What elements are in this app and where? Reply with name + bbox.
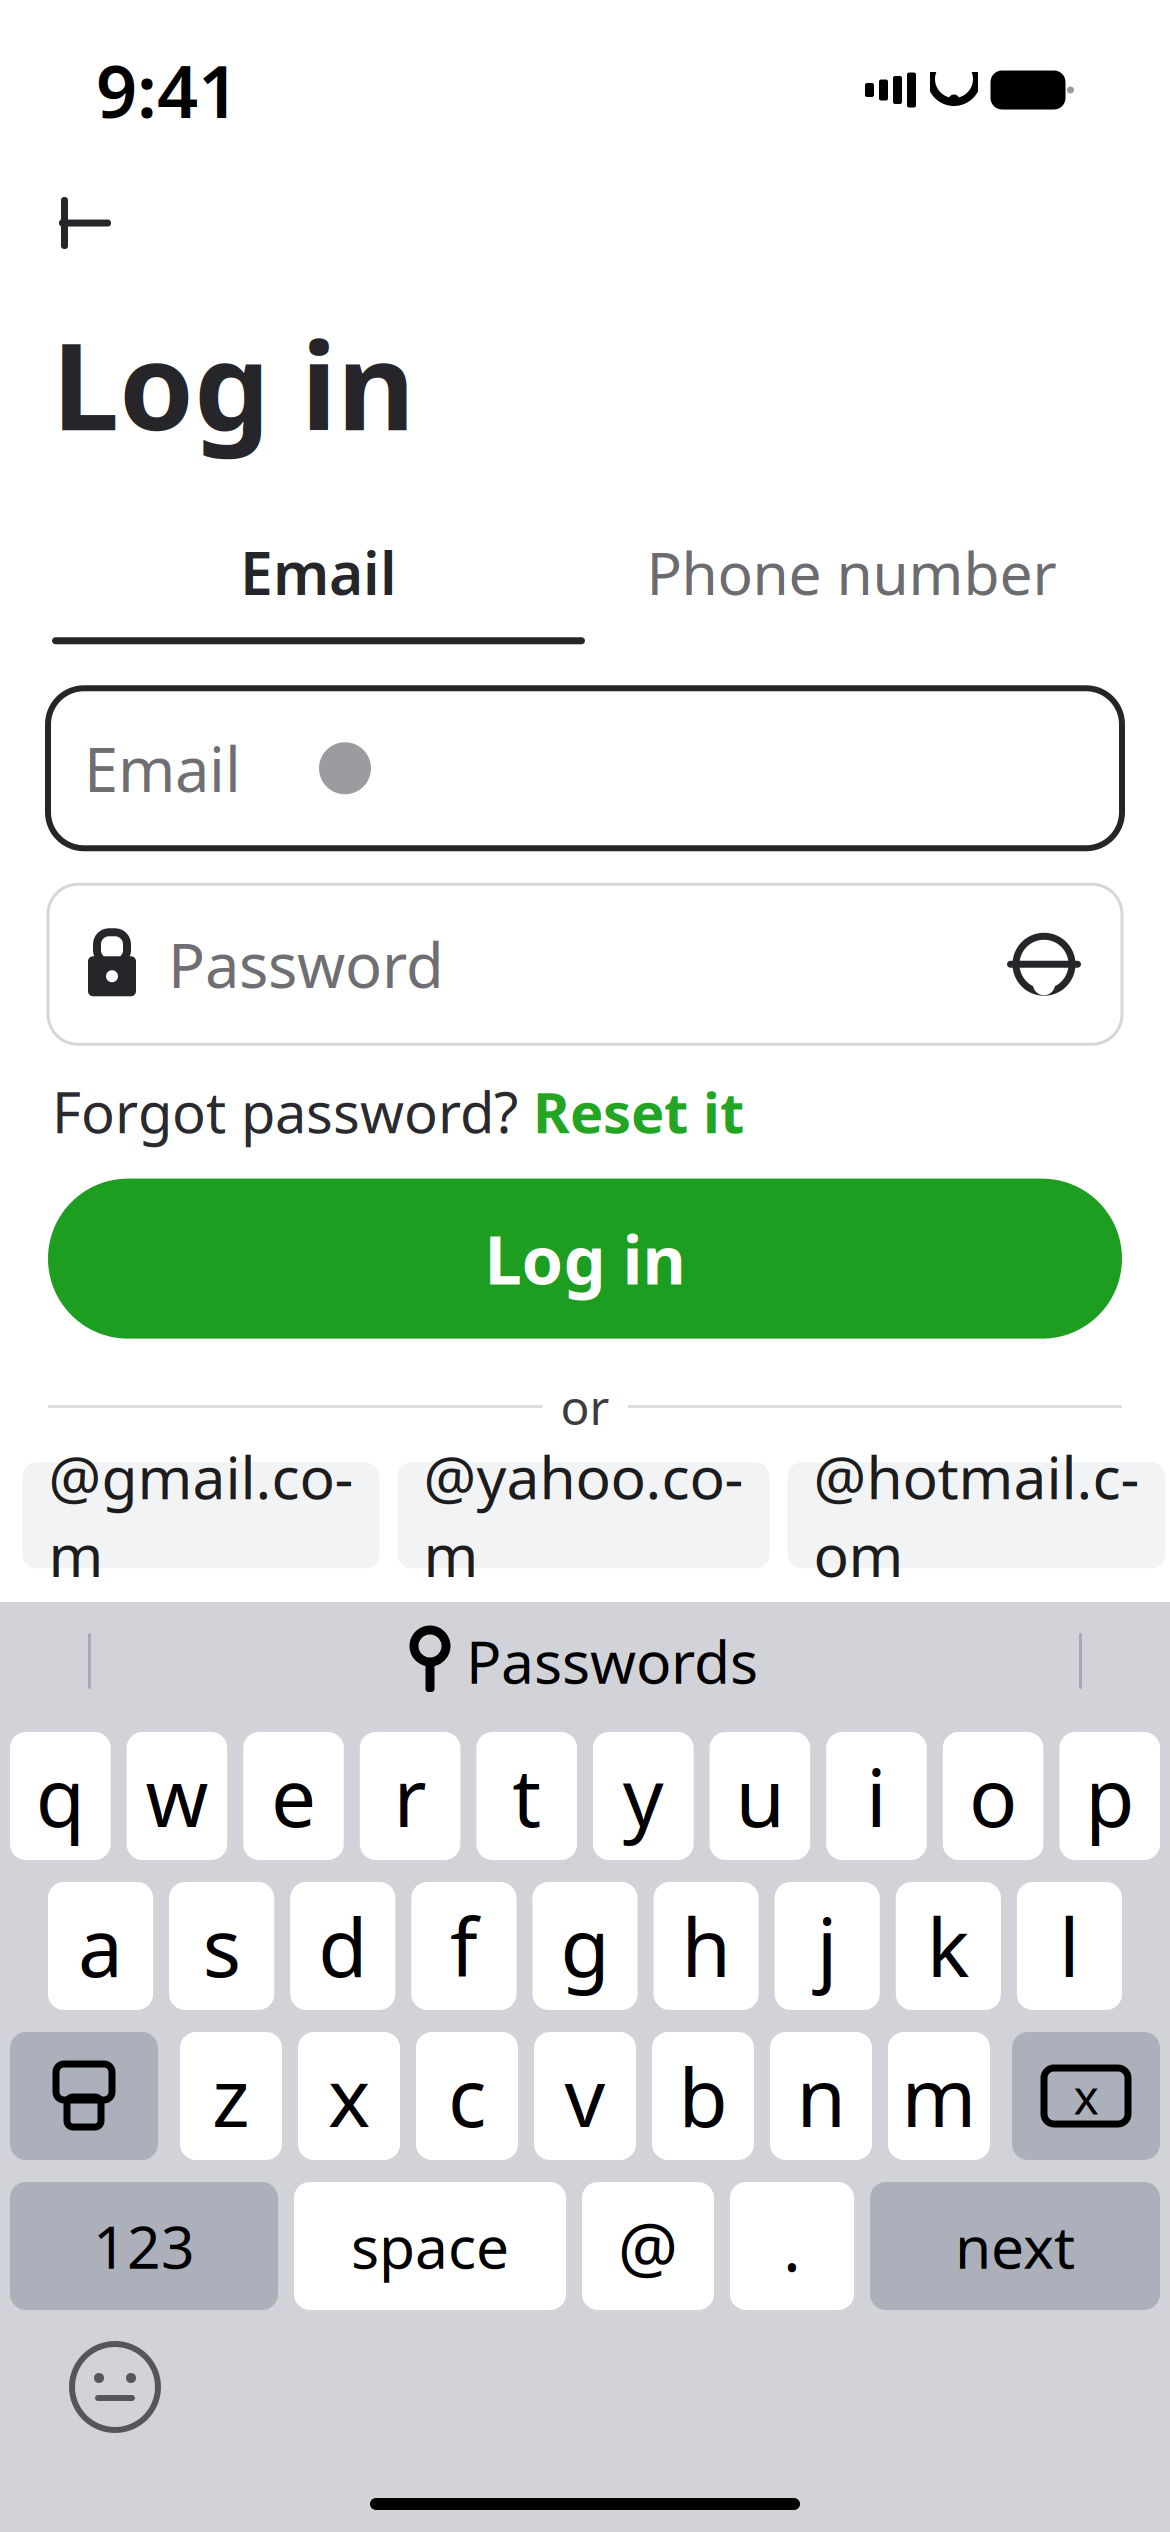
button[interactable]: p xyxy=(1059,1732,1160,1860)
button[interactable]: m xyxy=(888,2032,990,2160)
button[interactable]: space xyxy=(294,2182,566,2310)
button[interactable]: @gmail.com xyxy=(22,1462,379,1568)
button[interactable]: . xyxy=(730,2182,854,2310)
button[interactable]: y xyxy=(593,1732,694,1860)
button[interactable]: f xyxy=(411,1882,516,2010)
button[interactable]: n xyxy=(770,2032,872,2160)
button[interactable]: q xyxy=(10,1732,111,1860)
staticText: Log in xyxy=(484,1214,685,1303)
staticText: j xyxy=(817,1893,838,1999)
button[interactable]: h xyxy=(654,1882,759,2010)
button[interactable]: z xyxy=(180,2032,282,2160)
button[interactable]: x xyxy=(298,2032,400,2160)
staticText: Password xyxy=(168,923,444,1005)
staticText: a xyxy=(78,1893,123,1999)
button[interactable]: c xyxy=(416,2032,518,2160)
button[interactable]: u xyxy=(710,1732,810,1860)
button[interactable]: Delete xyxy=(1012,2032,1160,2160)
staticText: Log in xyxy=(52,304,415,463)
button[interactable]: g xyxy=(532,1882,637,2010)
button[interactable]: next xyxy=(870,2182,1160,2310)
button[interactable]: o xyxy=(943,1732,1043,1860)
staticText: Passwords xyxy=(466,1622,758,1700)
staticText: Forgot password? xyxy=(52,1074,533,1149)
button[interactable]: @yahoo.com xyxy=(397,1462,769,1568)
button[interactable]: d xyxy=(290,1882,395,2010)
button[interactable]: @hotmail.com xyxy=(787,1462,1165,1568)
staticText: g xyxy=(560,1893,609,1999)
staticText: w xyxy=(145,1743,208,1849)
staticText: z xyxy=(212,2043,250,2149)
button[interactable]: Log in xyxy=(48,1179,1122,1339)
staticText: p xyxy=(1085,1743,1134,1849)
staticText: . xyxy=(783,2202,801,2290)
staticText: h xyxy=(682,1893,731,1999)
button[interactable]: Email xyxy=(48,688,1122,848)
staticText: m xyxy=(901,2043,976,2149)
staticText: k xyxy=(927,1893,970,1999)
button[interactable]: Passwords xyxy=(412,1622,758,1700)
staticText: t xyxy=(512,1743,541,1849)
button[interactable]: j xyxy=(775,1882,880,2010)
button[interactable]: l xyxy=(1017,1882,1122,2010)
button[interactable]: Reset it xyxy=(533,1074,744,1149)
button[interactable]: s xyxy=(169,1882,274,2010)
button[interactable]: w xyxy=(127,1732,227,1860)
button[interactable]: b xyxy=(652,2032,754,2160)
staticText: Reset it xyxy=(533,1074,744,1149)
staticText: e xyxy=(271,1743,316,1849)
staticText: @hotmail.com xyxy=(813,1437,1139,1593)
staticText: @yahoo.com xyxy=(423,1437,743,1593)
staticText: or xyxy=(560,1375,609,1438)
staticText: s xyxy=(203,1893,241,1999)
button[interactable]: 123 xyxy=(10,2182,278,2310)
button[interactable]: k xyxy=(896,1882,1001,2010)
staticText: 123 xyxy=(93,2207,195,2285)
button[interactable]: Emoji keyboard xyxy=(60,2332,170,2442)
staticText: 9:41 xyxy=(96,42,239,138)
staticText: d xyxy=(318,1893,367,1999)
staticText: o xyxy=(969,1743,1017,1849)
staticText: space xyxy=(351,2207,509,2285)
staticText: l xyxy=(1059,1893,1080,1999)
staticText: Email xyxy=(240,533,397,611)
button[interactable]: Password xyxy=(48,884,1122,1044)
staticText: Phone number xyxy=(646,533,1056,611)
staticText: i xyxy=(866,1743,887,1849)
staticText: u xyxy=(735,1743,784,1849)
staticText: f xyxy=(450,1893,478,1999)
button[interactable]: a xyxy=(48,1882,153,2010)
staticText: v xyxy=(564,2043,605,2149)
staticText: q xyxy=(36,1743,85,1849)
button[interactable]: Email xyxy=(52,507,585,637)
staticText: next xyxy=(955,2207,1075,2285)
staticText: r xyxy=(394,1743,427,1849)
staticText: n xyxy=(796,2043,845,2149)
staticText: x xyxy=(1073,2064,1098,2128)
button[interactable]: t xyxy=(476,1732,577,1860)
button[interactable]: Phone number xyxy=(585,507,1118,637)
staticText: c xyxy=(448,2043,486,2149)
staticText: Email xyxy=(84,727,241,809)
button[interactable]: r xyxy=(360,1732,460,1860)
button[interactable]: @ xyxy=(582,2182,714,2310)
staticText: y xyxy=(623,1743,664,1849)
button[interactable]: Back xyxy=(40,178,130,268)
staticText: x xyxy=(328,2043,370,2149)
button[interactable]: e xyxy=(243,1732,344,1860)
staticText: @ xyxy=(618,2202,678,2290)
staticText: b xyxy=(678,2043,727,2149)
button[interactable]: v xyxy=(534,2032,636,2160)
button[interactable]: i xyxy=(826,1732,927,1860)
staticText: @gmail.com xyxy=(48,1437,353,1593)
button[interactable]: Shift xyxy=(10,2032,158,2160)
